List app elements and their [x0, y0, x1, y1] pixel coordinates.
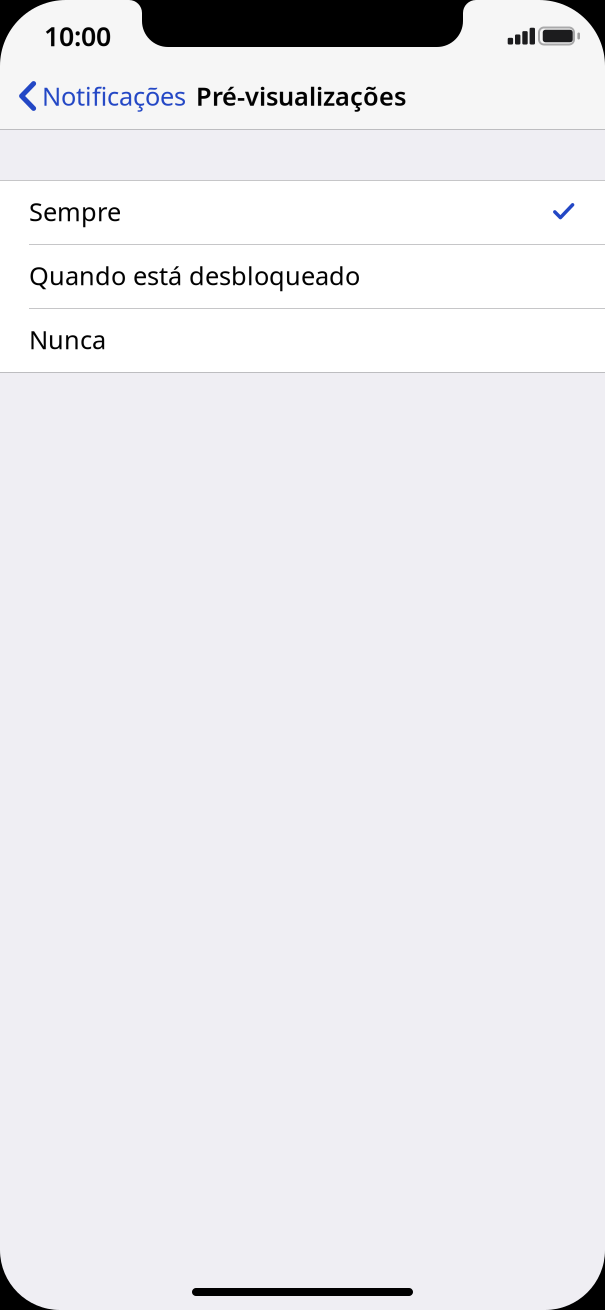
- button[interactable]: Pré-visualizações: [191, 72, 406, 129]
- staticText: 10:00: [44, 18, 111, 54]
- staticText: Notificações: [42, 79, 186, 113]
- button[interactable]: Nunca: [0, 309, 605, 372]
- staticText: Nunca: [29, 323, 106, 356]
- staticText: Pré-visualizações: [196, 79, 406, 113]
- staticText: Sempre: [29, 195, 121, 228]
- button[interactable]: Notificações: [0, 72, 191, 129]
- button[interactable]: Quando está desbloqueado: [0, 245, 605, 308]
- staticText: Quando está desbloqueado: [29, 259, 360, 292]
- button[interactable]: Sempre: [0, 181, 605, 244]
